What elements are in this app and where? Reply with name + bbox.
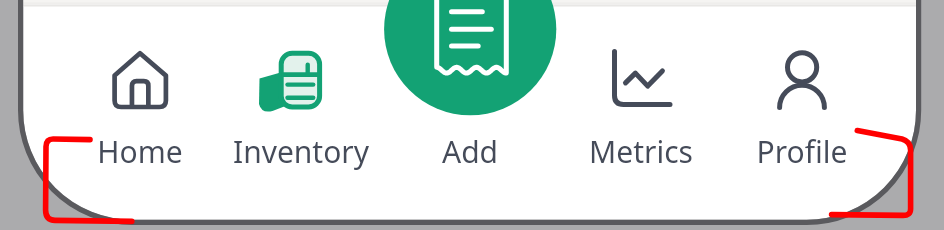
staticText: Home <box>57 131 223 172</box>
staticText: Add <box>387 131 553 172</box>
button[interactable]: Metrics <box>558 36 724 186</box>
button[interactable]: Home <box>57 36 223 186</box>
staticText: Inventory <box>218 131 384 172</box>
button[interactable]: Add <box>387 36 553 186</box>
staticText: Metrics <box>558 131 724 172</box>
staticText: Profile <box>719 131 885 172</box>
button[interactable]: Inventory <box>218 36 384 186</box>
button[interactable]: Profile <box>719 36 885 186</box>
